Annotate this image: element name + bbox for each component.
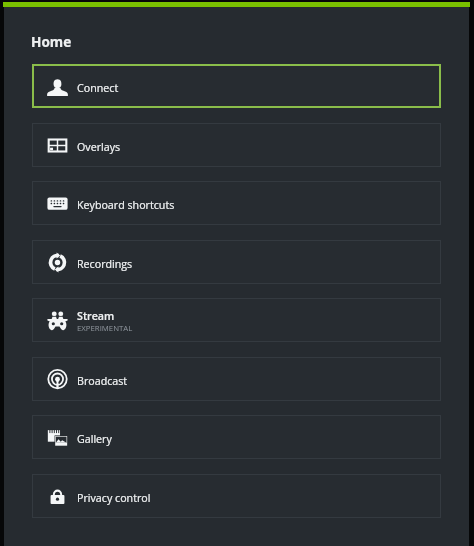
staticText: Home [31,32,72,51]
staticText: Broadcast [77,374,128,389]
button[interactable]: Recordings [32,240,441,284]
staticText: Keyboard shortcuts [77,198,175,213]
button[interactable]: Overlays [32,123,441,167]
staticText: Overlays [77,140,121,155]
staticText: Stream [77,309,115,324]
button[interactable]: Privacy control [32,474,441,518]
staticText: Connect [77,81,119,96]
staticText: Gallery [77,432,112,447]
button[interactable]: Stream [32,298,441,342]
staticText: Recordings [77,257,133,272]
button[interactable]: Broadcast [32,357,441,401]
button[interactable]: Keyboard shortcuts [32,181,441,225]
staticText: EXPERIMENTAL [77,323,133,334]
button[interactable]: Gallery [32,415,441,459]
button[interactable]: Connect [32,64,441,108]
staticText: Privacy control [77,491,151,506]
